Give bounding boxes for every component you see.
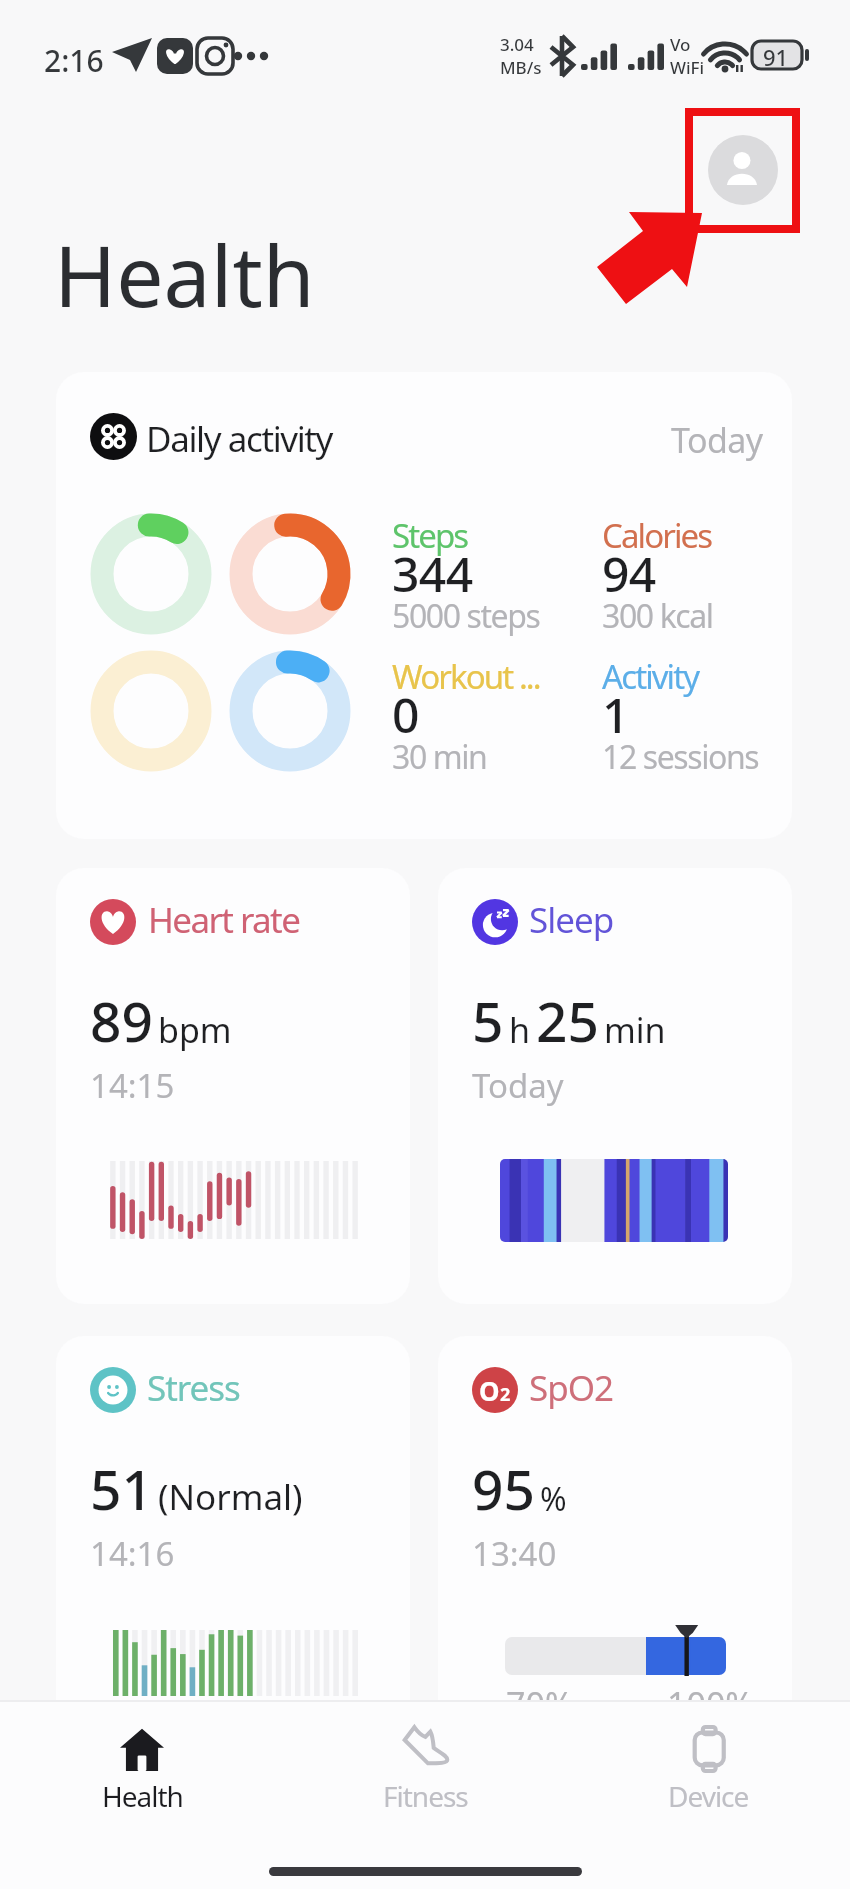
staticText: Stress [147,1364,240,1412]
staticText: 3.04 [500,33,534,56]
staticText: Health [54,217,315,331]
button[interactable]: Health [0,1702,284,1822]
staticText: 14:15 [90,1063,175,1108]
staticText: min [604,1007,666,1053]
staticText: Health [102,1777,183,1815]
button[interactable]: Device [567,1702,850,1822]
button[interactable]: Stress [56,1336,410,1736]
staticText: bpm [158,1007,232,1053]
staticText: 25 [536,983,599,1058]
staticText: % [540,1477,567,1521]
staticText: Steps [392,513,468,558]
staticText: 51 [90,1451,153,1526]
staticText: Sleep [529,896,614,944]
staticText: MB/s [500,56,542,79]
staticText: WiFi [670,56,705,79]
staticText: Today [671,417,763,463]
staticText: Fitness [383,1777,468,1815]
button[interactable]: Sleep [438,868,792,1304]
staticText: 91 [763,42,789,72]
staticText: 12 sessions [602,735,759,779]
staticText: Device [668,1777,749,1815]
button[interactable]: Fitness [284,1702,567,1822]
staticText: (Normal) [158,1473,303,1521]
staticText: 95 [472,1451,535,1526]
staticText: 30 min [392,735,487,779]
staticText: 300 kcal [602,594,713,638]
staticText: Daily activity [146,415,332,463]
staticText: 0 [392,682,419,747]
staticText: 13:40 [472,1531,557,1576]
staticText: O [479,1373,500,1408]
staticText: 1 [602,682,629,747]
staticText: 70% [506,1681,574,1727]
staticText: 89 [90,983,153,1058]
staticText: 344 [392,541,473,606]
staticText: Vo [670,33,691,56]
staticText: Today [472,1063,564,1108]
staticText: Activity [602,654,699,699]
staticText: Calories [602,513,712,558]
button[interactable]: Heart rate [56,868,410,1304]
staticText: 14:16 [90,1531,175,1576]
button[interactable]: O [438,1336,792,1736]
staticText: Workout ... [392,654,540,699]
staticText: 2:16 [44,40,104,81]
button[interactable]: Profile [708,135,778,205]
staticText: 100% [667,1681,754,1727]
staticText: Heart rate [148,896,300,944]
staticText: 5 [472,983,504,1058]
staticText: 5000 steps [392,594,540,638]
staticText: SpO2 [529,1364,614,1412]
staticText: 94 [602,541,656,606]
staticText: 2 [500,1382,511,1407]
staticText: h [509,1007,531,1053]
button[interactable]: Daily activity [56,372,792,839]
